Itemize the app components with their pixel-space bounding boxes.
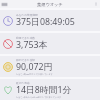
staticText: 90,072円 — [16, 61, 53, 73]
staticText: 節約できた金額 — [16, 58, 36, 61]
staticText: あなたの禁煙期間 — [16, 13, 38, 16]
staticText: 14日8時間1分 — [16, 84, 72, 96]
button[interactable]: More options — [92, 0, 100, 8]
button[interactable]: 節約できた金額 — [0, 56, 100, 77]
button[interactable]: あなたの禁煙期間 — [0, 10, 100, 31]
staticText: 延びた寿命 — [16, 81, 30, 84]
staticText: 我慢できた本数 — [16, 36, 36, 39]
button[interactable]: 我慢できた本数 — [0, 33, 100, 54]
button[interactable]: Menu — [0, 0, 8, 8]
staticText: たばこ1箱480円として計算しています — [16, 73, 53, 76]
staticText: 禁煙ウオッチ — [37, 2, 63, 7]
staticText: 375日08:49:05 — [16, 16, 75, 28]
button[interactable]: 延びた寿命 — [0, 79, 100, 100]
staticText: 3,753本 — [16, 39, 48, 51]
staticText: たばこ1本あたり5分30秒として計算しています — [16, 96, 62, 99]
